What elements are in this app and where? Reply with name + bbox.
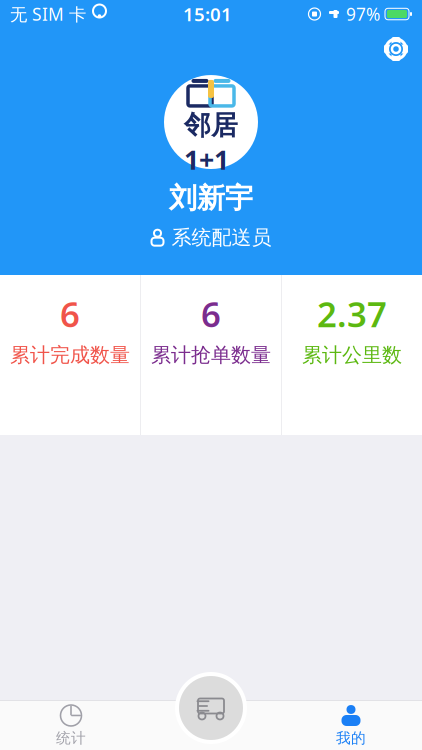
staticText: 累计抢单数量 bbox=[151, 343, 271, 367]
staticText: 邻居1+1 bbox=[184, 109, 238, 177]
button[interactable]: 统计 bbox=[1, 701, 141, 750]
staticText: 6 bbox=[201, 291, 221, 337]
staticText: 我的 bbox=[336, 729, 366, 747]
staticText: 6 bbox=[60, 291, 80, 337]
staticText: 2.37 bbox=[317, 291, 387, 337]
button[interactable]: 我的 bbox=[281, 701, 421, 750]
button[interactable]: 6 bbox=[141, 275, 281, 435]
staticText: 系统配送员 bbox=[171, 225, 271, 250]
staticText: 15:01 bbox=[183, 2, 232, 26]
button[interactable]: 6 bbox=[0, 275, 140, 435]
staticText: 统计 bbox=[56, 729, 86, 747]
staticText: 无 SIM 卡 bbox=[10, 2, 86, 25]
staticText: 累计公里数 bbox=[302, 343, 402, 367]
staticText: 首页 bbox=[196, 718, 226, 736]
button[interactable]: 首页 bbox=[141, 701, 281, 750]
staticText: 累计完成数量 bbox=[10, 343, 130, 367]
button[interactable]: 2.37 bbox=[282, 275, 422, 435]
staticText: 刘新宇 bbox=[169, 181, 253, 215]
staticText: 97% bbox=[346, 2, 380, 25]
button[interactable]: 首页 bbox=[175, 672, 247, 744]
button[interactable]: 设置 bbox=[374, 29, 418, 69]
